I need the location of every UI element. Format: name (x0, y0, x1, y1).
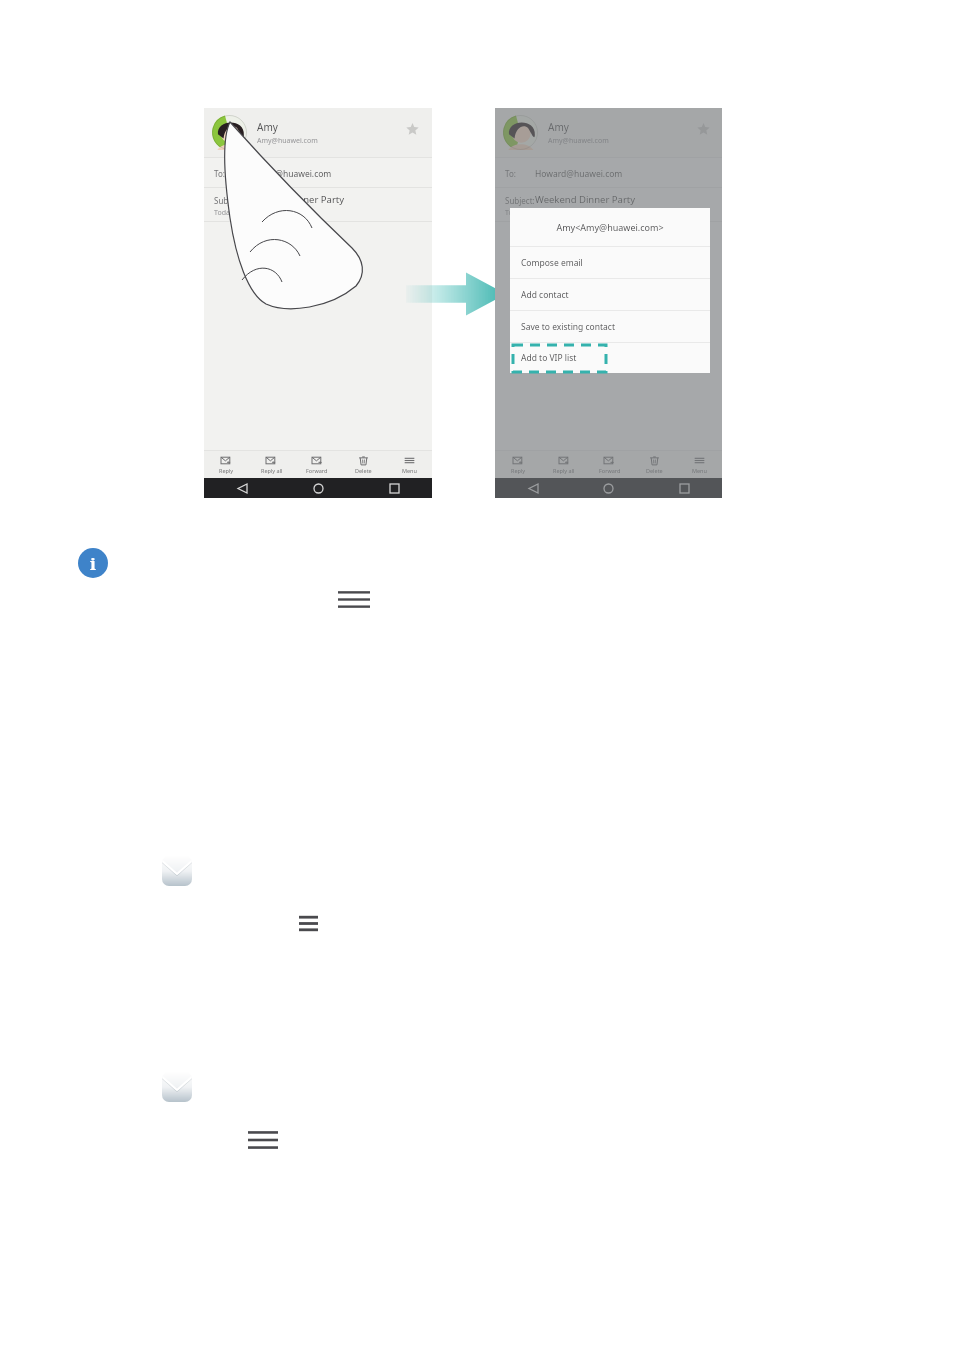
staticText: i (90, 552, 96, 575)
staticText: Forward (599, 467, 621, 474)
staticText: Reply all (261, 467, 283, 474)
button[interactable]: Back (234, 480, 250, 496)
staticText: Today, 10:50 AM (505, 208, 559, 218)
button[interactable]: Forward (294, 450, 340, 478)
staticText: Forward (306, 467, 328, 474)
button[interactable]: Recents (676, 480, 692, 496)
button[interactable]: Menu (299, 916, 318, 931)
staticText: Today, 10:50 AM (214, 208, 268, 218)
button[interactable]: Add contact (510, 279, 710, 310)
staticText: Save to existing contact (521, 321, 615, 333)
staticText: To: (505, 168, 516, 179)
staticText: Amy (548, 120, 569, 134)
button[interactable]: Save to existing contact (510, 311, 710, 342)
button[interactable]: Forward (587, 450, 632, 478)
staticText: Amy (257, 120, 278, 134)
staticText: Subject: (214, 195, 244, 206)
button[interactable]: Reply all (541, 450, 587, 478)
staticText: Howard@huawei.com (535, 168, 623, 180)
staticText: Reply all (553, 467, 575, 474)
button[interactable]: Delete (340, 450, 386, 478)
button[interactable]: Email (162, 1072, 192, 1102)
staticText: Howard@huawei.com (244, 168, 332, 180)
staticText: Reply (219, 467, 234, 474)
button[interactable]: Reply all (249, 450, 294, 478)
button[interactable]: Back (525, 480, 541, 496)
staticText: Compose email (521, 257, 583, 269)
staticText: Delete (355, 467, 372, 474)
staticText: Menu (402, 467, 417, 474)
button[interactable]: Menu (248, 1131, 278, 1149)
staticText: Amy<Amy@huawei.com> (556, 221, 664, 233)
button[interactable]: Favorite (694, 120, 712, 138)
button[interactable]: Email (162, 856, 192, 886)
button[interactable]: Menu (677, 450, 722, 478)
button[interactable]: Add to VIP list (510, 343, 710, 373)
button[interactable]: Menu (338, 591, 370, 608)
staticText: Menu (692, 467, 707, 474)
staticText: Subject: (505, 195, 535, 206)
button[interactable]: Home (310, 480, 326, 496)
button[interactable]: Compose email (510, 247, 710, 278)
button[interactable]: Menu (386, 450, 432, 478)
button[interactable]: Information (78, 548, 108, 578)
button[interactable]: Reply (204, 450, 249, 478)
staticText: Weekend Dinner Party (244, 193, 345, 206)
staticText: Add contact (521, 289, 569, 301)
staticText: Amy@huawei.com (548, 136, 609, 146)
staticText: Weekend Dinner Party (535, 193, 636, 206)
button[interactable]: Home (600, 480, 616, 496)
staticText: Reply (511, 467, 526, 474)
button[interactable]: Favorite (403, 120, 421, 138)
staticText: Delete (646, 467, 663, 474)
button[interactable]: Reply (495, 450, 541, 478)
staticText: To: (214, 168, 225, 179)
button[interactable]: Recents (386, 480, 402, 496)
button[interactable]: Delete (632, 450, 677, 478)
staticText: Amy@huawei.com (257, 136, 318, 146)
staticText: Add to VIP list (521, 352, 577, 364)
